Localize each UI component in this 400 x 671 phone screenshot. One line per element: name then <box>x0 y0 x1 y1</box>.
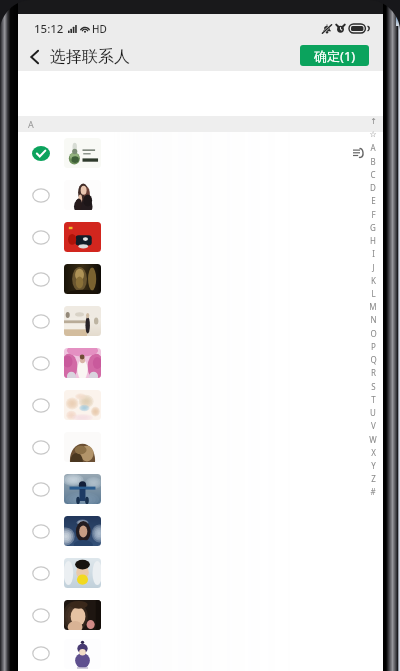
staticText: G <box>370 222 376 233</box>
button[interactable] <box>18 426 383 468</box>
button[interactable]: Alphabet index <box>365 115 381 515</box>
button[interactable] <box>18 132 383 174</box>
button[interactable]: 确定(1) <box>300 45 369 66</box>
staticText: 选择联系人 <box>50 47 130 67</box>
staticText: ↑ <box>370 117 377 126</box>
button[interactable] <box>18 468 383 510</box>
button[interactable] <box>18 216 383 258</box>
staticText: Q <box>370 354 377 365</box>
staticText: ☆ <box>369 130 377 139</box>
staticText: A <box>28 118 34 130</box>
staticText: Z <box>371 473 376 484</box>
staticText: N <box>370 314 377 325</box>
staticText: S <box>371 381 376 392</box>
staticText: B <box>370 156 376 167</box>
staticText: I <box>372 248 375 259</box>
staticText: M <box>369 301 377 312</box>
button[interactable] <box>18 384 383 426</box>
staticText: E <box>371 195 376 206</box>
staticText: P <box>371 341 376 352</box>
staticText: # <box>370 486 376 497</box>
button[interactable] <box>18 174 383 216</box>
button[interactable] <box>18 510 383 552</box>
staticText: Y <box>371 460 376 471</box>
staticText: A <box>370 142 376 153</box>
button[interactable] <box>18 594 383 636</box>
staticText: H <box>370 235 376 246</box>
staticText: D <box>370 182 376 193</box>
staticText: V <box>371 420 376 431</box>
staticText: L <box>371 288 376 299</box>
staticText: 15:12 <box>34 21 64 37</box>
button[interactable] <box>18 300 383 342</box>
staticText: X <box>371 447 376 458</box>
staticText: C <box>370 169 376 180</box>
staticText: W <box>369 434 377 445</box>
button[interactable] <box>18 342 383 384</box>
staticText: J <box>372 262 375 273</box>
staticText: 确定(1) <box>314 47 356 65</box>
staticText: U <box>370 407 376 418</box>
button[interactable] <box>18 636 383 671</box>
button[interactable] <box>18 552 383 594</box>
button[interactable] <box>18 258 383 300</box>
staticText: T <box>371 394 376 405</box>
staticText: F <box>371 209 376 220</box>
staticText: R <box>371 367 376 378</box>
staticText: HD <box>92 22 107 36</box>
staticText: O <box>370 328 377 339</box>
staticText: K <box>371 275 376 286</box>
button[interactable]: Back <box>23 41 45 71</box>
